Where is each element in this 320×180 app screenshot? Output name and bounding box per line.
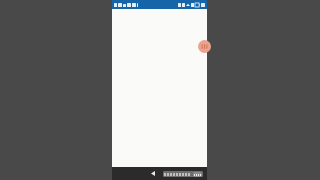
button[interactable]: Notification badge [198, 40, 211, 53]
button[interactable]: Recent apps [190, 168, 201, 179]
button[interactable]: Home [154, 168, 165, 179]
button[interactable]: Back [148, 168, 157, 179]
